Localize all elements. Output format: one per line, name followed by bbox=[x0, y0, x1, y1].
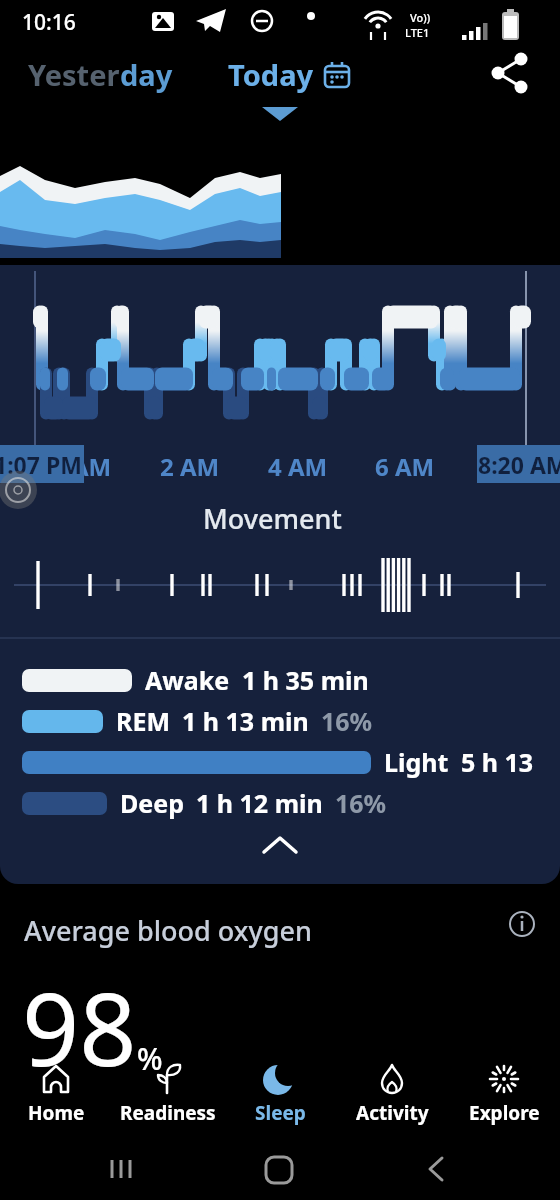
staticText: LTE1 bbox=[405, 25, 430, 40]
staticText: 4 AM bbox=[268, 450, 328, 483]
staticText: Activity bbox=[356, 1100, 429, 1126]
staticText: 6 AM bbox=[375, 450, 435, 483]
staticText: 2 AM bbox=[160, 450, 220, 483]
button[interactable]: Deep bbox=[22, 786, 387, 820]
button[interactable]: Readiness bbox=[112, 1062, 224, 1140]
staticText: Awake bbox=[145, 663, 230, 697]
button[interactable]: REM bbox=[22, 704, 373, 738]
staticText: 1 h 35 min bbox=[242, 663, 369, 697]
button[interactable]: Today bbox=[228, 55, 350, 94]
staticText: REM bbox=[116, 704, 170, 738]
staticText: 10:16 bbox=[22, 8, 76, 37]
staticText: 8:20 AM bbox=[478, 449, 560, 480]
button[interactable]: Home bbox=[0, 1062, 112, 1140]
staticText: Yester bbox=[28, 55, 120, 94]
button[interactable] bbox=[488, 50, 538, 100]
staticText: Movement bbox=[203, 500, 342, 537]
staticText: AM bbox=[72, 450, 112, 483]
staticText: day bbox=[120, 55, 173, 94]
staticText: 16% bbox=[335, 786, 387, 820]
staticText: Readiness bbox=[120, 1100, 216, 1126]
staticText: 16% bbox=[321, 704, 373, 738]
button[interactable]: Sleep bbox=[224, 1062, 336, 1140]
staticText: 1 h 13 min bbox=[182, 704, 309, 738]
staticText: Average blood oxygen bbox=[24, 912, 312, 949]
staticText: Home bbox=[28, 1100, 85, 1126]
staticText: Deep bbox=[120, 786, 184, 820]
button[interactable]: Yester bbox=[28, 55, 173, 94]
button[interactable] bbox=[244, 830, 316, 870]
staticText: Sleep bbox=[255, 1100, 306, 1126]
staticText: % bbox=[137, 1038, 163, 1079]
staticText: Explore bbox=[469, 1100, 540, 1126]
button[interactable]: Awake bbox=[22, 663, 369, 697]
staticText: Light bbox=[384, 745, 449, 779]
button[interactable]: Explore bbox=[448, 1062, 560, 1140]
staticText: Today bbox=[228, 55, 314, 94]
button[interactable] bbox=[500, 902, 544, 946]
staticText: 1:07 PM bbox=[0, 449, 82, 480]
staticText: Vo)) bbox=[410, 10, 431, 25]
button[interactable]: Activity bbox=[336, 1062, 448, 1140]
staticText: 5 h 13 bbox=[461, 745, 534, 779]
button[interactable]: Light bbox=[22, 745, 534, 779]
staticText: 98 bbox=[22, 959, 137, 1095]
staticText: 1 h 12 min bbox=[196, 786, 323, 820]
